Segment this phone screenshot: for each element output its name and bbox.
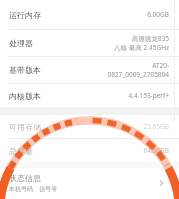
- button[interactable]: 状态信息: [0, 168, 179, 198]
- button[interactable]: 处理器: [0, 30, 179, 57]
- staticText: 基带版本: [9, 65, 41, 75]
- staticText: 处理器: [9, 38, 33, 48]
- button[interactable]: 内核版本: [0, 84, 179, 107]
- staticText: 4.4.153-perf+: [128, 91, 169, 100]
- staticText: 八核 最高 2.45GHz: [114, 43, 169, 52]
- staticText: 状态信息: [9, 173, 41, 183]
- staticText: 本机号码、信号等: [9, 185, 57, 193]
- button[interactable]: 总容量: [0, 139, 179, 162]
- button[interactable]: 可用存储: [0, 115, 179, 139]
- staticText: 23.65GB: [143, 122, 169, 131]
- staticText: 总容量: [9, 146, 33, 156]
- staticText: 可用存储: [9, 122, 41, 132]
- staticText: 64.00GB: [143, 146, 169, 155]
- staticText: AT20-: [152, 61, 169, 70]
- staticText: 高通骁龙835: [131, 34, 169, 43]
- button[interactable]: 运行内存: [0, 0, 179, 30]
- other: 状态信息: [157, 178, 167, 188]
- staticText: 0827_0009_2705804: [107, 70, 169, 79]
- staticText: 运行内存: [9, 10, 41, 20]
- staticText: 6.00GB: [147, 10, 169, 19]
- staticText: 内核版本: [9, 91, 41, 101]
- button[interactable]: 基带版本: [0, 57, 179, 84]
